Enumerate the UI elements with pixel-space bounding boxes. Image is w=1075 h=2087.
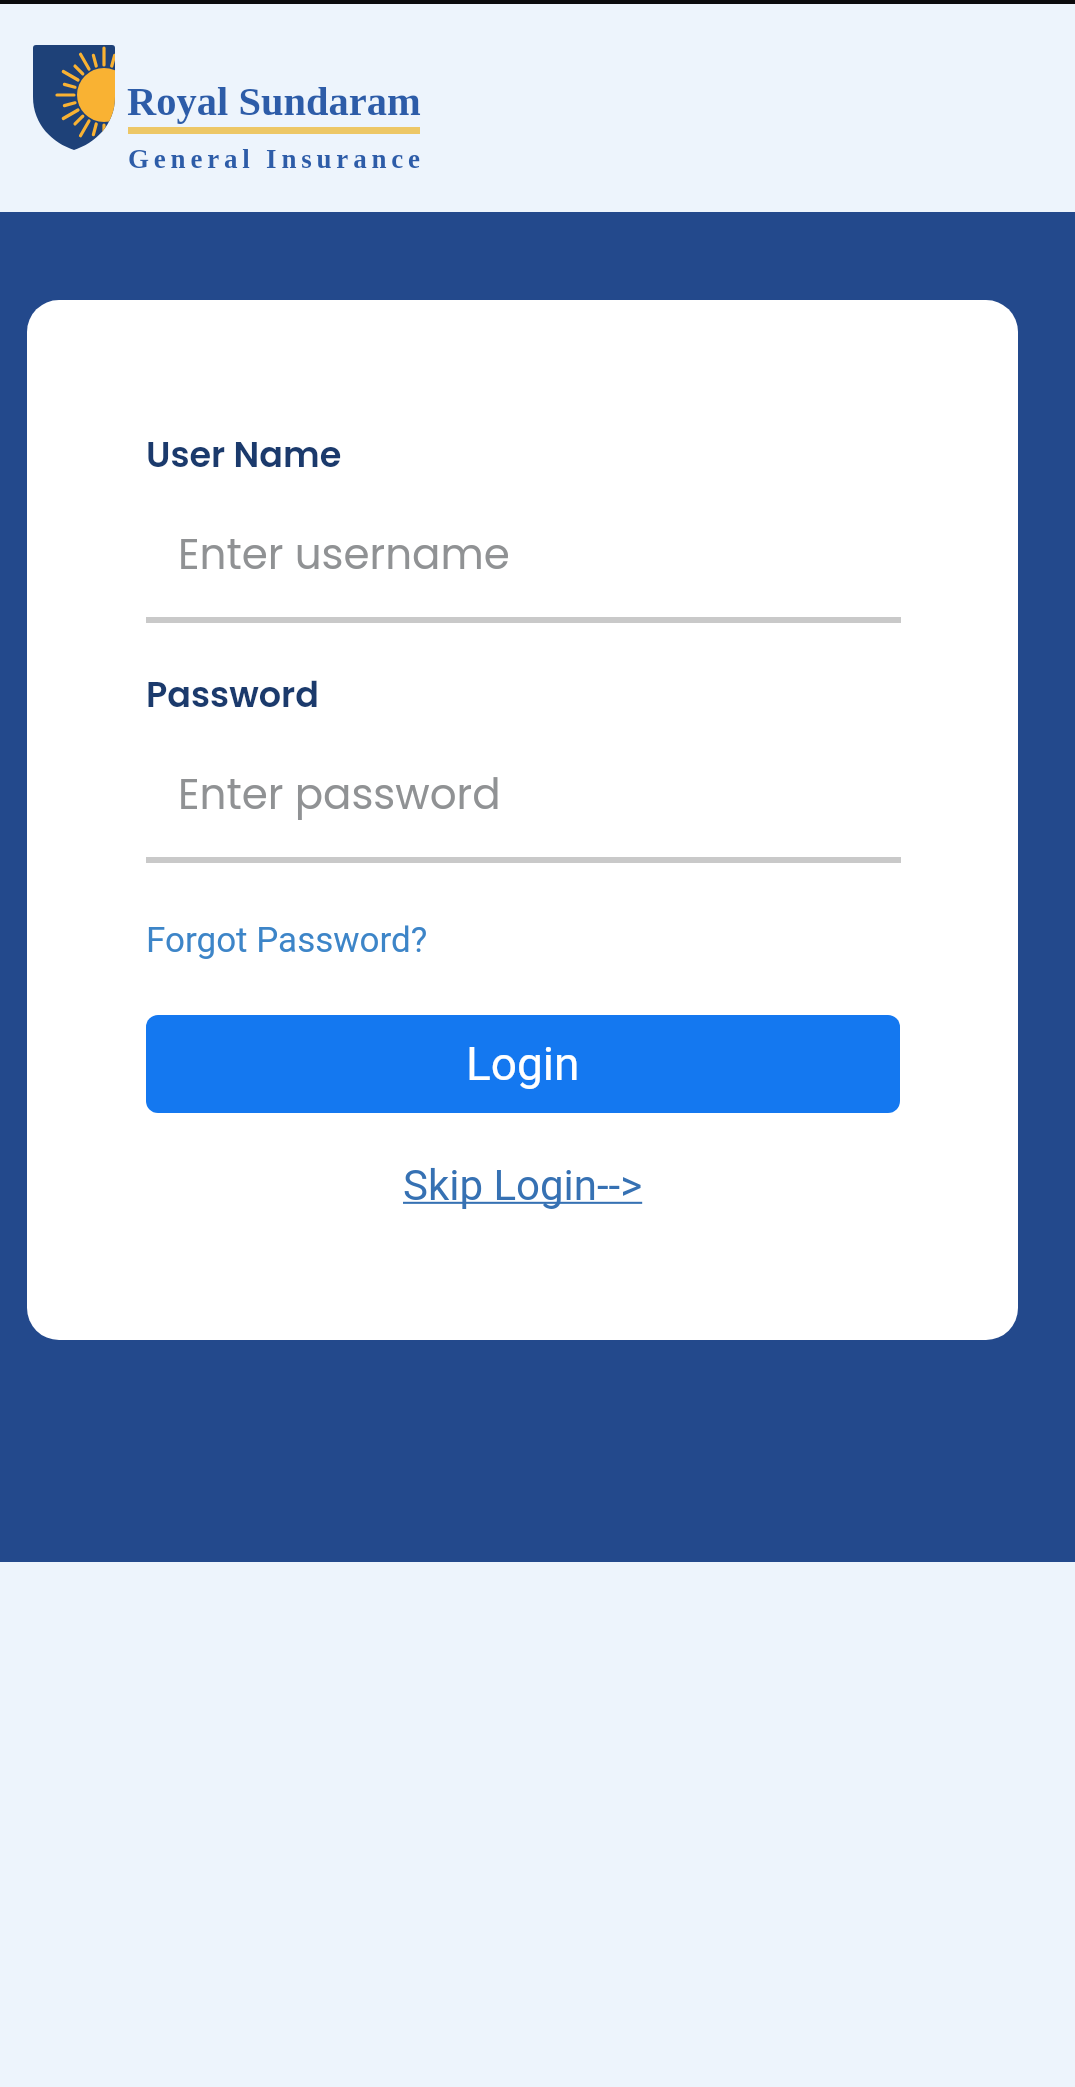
button[interactable]: Skip Login-->	[403, 1161, 643, 1210]
staticText: Enter password	[178, 765, 501, 824]
staticText: Forgot Password?	[146, 920, 428, 961]
staticText: Enter username	[178, 525, 510, 584]
staticText: Password	[146, 670, 319, 719]
staticText: Skip Login-->	[403, 1161, 643, 1210]
staticText: Login	[466, 1037, 580, 1091]
staticText: User Name	[146, 430, 342, 479]
button[interactable]: Forgot Password?	[146, 920, 428, 961]
staticText: General Insurance	[128, 144, 425, 174]
button[interactable]: Login	[146, 1015, 900, 1113]
button[interactable]: Enter username	[146, 510, 901, 623]
staticText: Royal Sundaram	[127, 79, 421, 124]
button[interactable]: Enter password	[146, 750, 901, 863]
